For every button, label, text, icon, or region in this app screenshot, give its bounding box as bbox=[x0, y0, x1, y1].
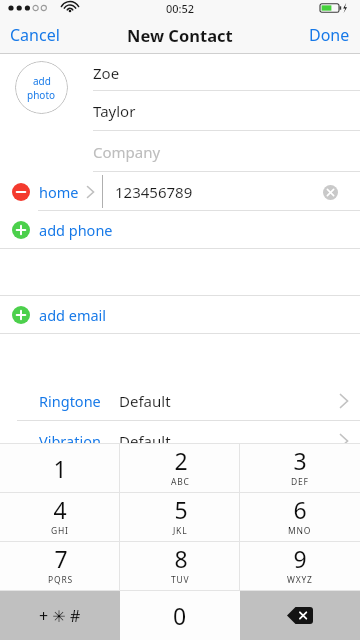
button[interactable]: 4 bbox=[0, 493, 120, 541]
staticText: Done bbox=[309, 24, 350, 46]
button[interactable]: Company bbox=[93, 131, 360, 172]
staticText: Zoe bbox=[93, 63, 120, 83]
button[interactable]: 9 bbox=[240, 542, 360, 590]
staticText: Ringtone bbox=[39, 391, 101, 411]
staticText: ABC bbox=[171, 476, 190, 488]
staticText: 4 bbox=[53, 494, 67, 525]
staticText: WXYZ bbox=[287, 574, 313, 586]
button[interactable]: 5 bbox=[120, 493, 240, 541]
staticText: Vibration bbox=[39, 431, 101, 451]
staticText: DEF bbox=[291, 476, 309, 488]
button[interactable]: Symbols plus star hash bbox=[0, 591, 120, 640]
staticText: Default bbox=[119, 391, 171, 411]
button[interactable]: Backspace bbox=[240, 591, 360, 640]
staticText: New Contact bbox=[127, 24, 233, 46]
staticText: JKL bbox=[173, 525, 188, 537]
staticText: MNO bbox=[288, 525, 312, 537]
button[interactable]: Remove phone bbox=[0, 172, 360, 211]
staticText: TUV bbox=[171, 574, 190, 586]
button[interactable]: 1 bbox=[0, 444, 120, 492]
staticText: 2 bbox=[174, 445, 188, 476]
staticText: GHI bbox=[51, 525, 69, 537]
staticText: PQRS bbox=[48, 574, 73, 586]
staticText: Company bbox=[93, 142, 161, 162]
staticText: 0 bbox=[173, 600, 187, 631]
staticText: 123456789 bbox=[115, 182, 193, 202]
other: Remove phone bbox=[12, 183, 30, 201]
staticText: 6 bbox=[293, 494, 307, 525]
staticText: 7 bbox=[54, 543, 68, 574]
button[interactable]: 7 bbox=[0, 542, 120, 590]
button[interactable]: add phone bbox=[0, 211, 360, 248]
button[interactable]: 3 bbox=[240, 444, 360, 492]
staticText: home bbox=[39, 182, 79, 202]
staticText: add bbox=[33, 74, 51, 88]
staticText: Cancel bbox=[10, 24, 60, 46]
staticText: 8 bbox=[174, 543, 188, 574]
button[interactable]: Zoe bbox=[93, 54, 360, 91]
staticText: + ✳ # bbox=[39, 605, 81, 627]
button[interactable]: Cancel bbox=[0, 16, 70, 54]
staticText: Default bbox=[119, 431, 171, 451]
staticText: 5 bbox=[174, 494, 188, 525]
button[interactable]: Taylor bbox=[93, 91, 360, 131]
staticText: photo bbox=[27, 88, 56, 102]
button[interactable]: 0 bbox=[120, 591, 240, 640]
staticText: 9 bbox=[293, 543, 307, 574]
button[interactable]: 2 bbox=[120, 444, 240, 492]
button[interactable]: 6 bbox=[240, 493, 360, 541]
button[interactable]: add photo bbox=[15, 61, 68, 114]
staticText: 1 bbox=[53, 453, 67, 484]
staticText: Taylor bbox=[93, 101, 136, 121]
button[interactable]: 8 bbox=[120, 542, 240, 590]
button[interactable]: add email bbox=[0, 296, 360, 333]
button[interactable]: Ringtone bbox=[0, 381, 360, 420]
button[interactable]: Vibration bbox=[0, 421, 360, 460]
staticText: add phone bbox=[39, 220, 113, 240]
staticText: 00:52 bbox=[166, 1, 195, 16]
staticText: 3 bbox=[293, 445, 307, 476]
staticText: add email bbox=[39, 305, 107, 325]
button[interactable]: Clear text bbox=[318, 180, 342, 204]
button[interactable]: Done bbox=[299, 16, 360, 54]
